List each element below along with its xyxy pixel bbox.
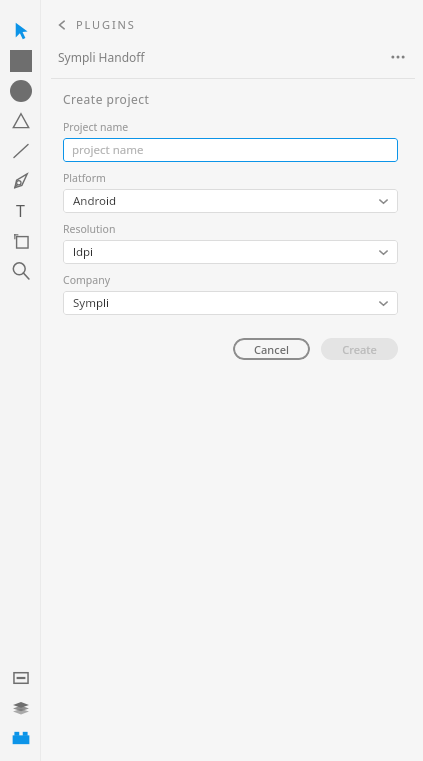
button[interactable]: project name [63,138,398,162]
staticText: Company [63,273,110,287]
button[interactable]: Inspector panel [0,663,41,693]
staticText: Sympli Handoff [58,49,145,65]
staticText: T [16,200,25,222]
staticText: Create project [63,91,150,107]
staticText: PLUGINS [76,17,136,32]
staticText: Android [73,193,117,209]
button[interactable]: Cancel [233,338,310,360]
button[interactable]: Line tool [0,136,41,166]
staticText: Sympli [73,295,109,311]
button[interactable]: Triangle tool [0,106,41,136]
button[interactable]: Ellipse tool [0,76,41,106]
button[interactable]: Zoom tool [0,256,41,286]
staticText: Platform [63,171,106,185]
button[interactable]: More options [387,46,409,68]
button[interactable]: Artboard tool [0,226,41,256]
button[interactable]: PLUGINS [51,15,142,34]
button[interactable]: Sympli [63,291,398,315]
button[interactable]: Android [63,189,398,213]
button[interactable]: Text tool [0,196,41,226]
button[interactable]: Pen tool [0,166,41,196]
staticText: ldpi [73,244,94,260]
staticText: Project name [63,120,129,134]
button[interactable]: ldpi [63,240,398,264]
button[interactable]: Select tool [0,16,41,46]
staticText: project name [72,142,144,158]
button[interactable]: Rectangle tool [0,46,41,76]
button[interactable]: Plugins panel [0,723,41,753]
staticText: Cancel [254,342,289,357]
staticText: Resolution [63,222,116,236]
button[interactable]: Layers panel [0,693,41,723]
staticText: Create [342,342,377,357]
button[interactable]: Create [321,338,398,360]
